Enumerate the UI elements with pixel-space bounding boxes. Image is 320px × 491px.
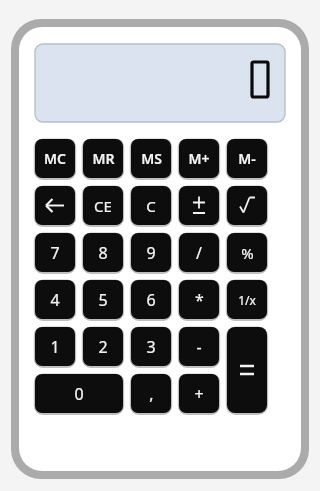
staticText: % bbox=[241, 243, 254, 263]
button[interactable]: 8 bbox=[83, 233, 123, 272]
staticText: M+ bbox=[188, 149, 210, 168]
button[interactable]: 9 bbox=[131, 233, 171, 272]
staticText: , bbox=[149, 383, 154, 405]
staticText: MC bbox=[44, 149, 66, 168]
staticText: 5 bbox=[98, 289, 108, 311]
button[interactable]: MC bbox=[35, 139, 75, 178]
staticText: 1 bbox=[50, 336, 60, 358]
button[interactable]: * bbox=[179, 280, 219, 319]
staticText: - bbox=[196, 336, 202, 358]
staticText: 1/x bbox=[238, 292, 256, 308]
button[interactable]: - bbox=[179, 327, 219, 366]
staticText: 6 bbox=[146, 289, 156, 311]
button[interactable]: / bbox=[179, 233, 219, 272]
staticText: 8 bbox=[98, 242, 108, 264]
button[interactable]: Square root bbox=[227, 186, 267, 225]
staticText: 3 bbox=[146, 336, 156, 358]
staticText: CE bbox=[94, 196, 112, 216]
staticText: MS bbox=[141, 149, 162, 168]
staticText: C bbox=[146, 196, 156, 216]
button[interactable]: CE bbox=[83, 186, 123, 225]
staticText: M- bbox=[238, 149, 256, 168]
button[interactable]: Plus minus sign bbox=[179, 186, 219, 225]
button[interactable]: 4 bbox=[35, 280, 75, 319]
button[interactable]: MS bbox=[131, 139, 171, 178]
button[interactable]: + bbox=[179, 374, 219, 413]
button[interactable]: 1 bbox=[35, 327, 75, 366]
button[interactable]: Backspace bbox=[35, 186, 75, 225]
staticText: 4 bbox=[50, 289, 60, 311]
button[interactable]: Equals bbox=[227, 327, 267, 413]
button[interactable]: 6 bbox=[131, 280, 171, 319]
staticText: 2 bbox=[98, 336, 108, 358]
staticText: 9 bbox=[146, 242, 156, 264]
staticText: * bbox=[195, 289, 204, 311]
staticText: 7 bbox=[50, 242, 60, 264]
staticText: MR bbox=[92, 149, 115, 168]
button[interactable]: 1/x bbox=[227, 280, 267, 319]
button[interactable]: 7 bbox=[35, 233, 75, 272]
staticText: / bbox=[196, 242, 202, 264]
button[interactable]: % bbox=[227, 233, 267, 272]
button[interactable]: 3 bbox=[131, 327, 171, 366]
staticText: + bbox=[194, 383, 204, 405]
button[interactable]: C bbox=[131, 186, 171, 225]
button[interactable]: M- bbox=[227, 139, 267, 178]
button[interactable]: , bbox=[131, 374, 171, 413]
button[interactable]: M+ bbox=[179, 139, 219, 178]
button[interactable]: 0 bbox=[35, 374, 123, 413]
button[interactable]: 2 bbox=[83, 327, 123, 366]
staticText: 0 bbox=[74, 383, 84, 405]
button[interactable]: MR bbox=[83, 139, 123, 178]
button[interactable]: 5 bbox=[83, 280, 123, 319]
